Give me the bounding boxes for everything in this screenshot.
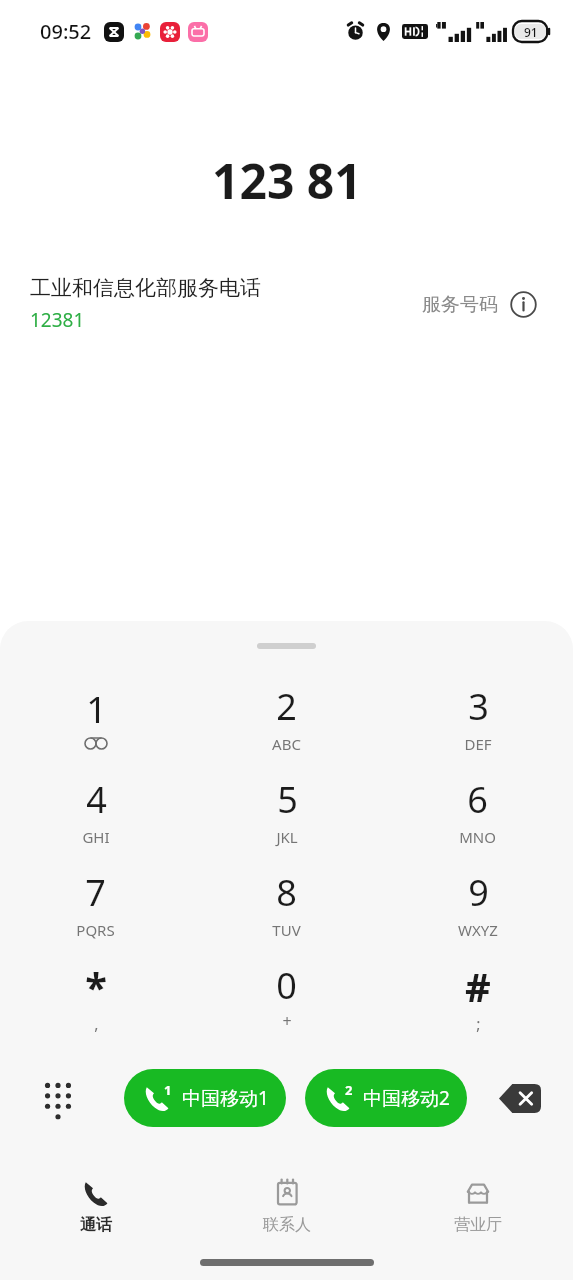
staticText: 9 xyxy=(468,868,489,917)
staticText: 09:52 xyxy=(40,18,92,45)
staticText: 1 xyxy=(164,1081,172,1099)
staticText: TUV xyxy=(272,920,301,940)
button[interactable]: 0 xyxy=(191,950,382,1043)
button[interactable]: 1 xyxy=(0,671,191,764)
button[interactable]: 营业厅 xyxy=(382,1167,573,1245)
staticText: 123 81 xyxy=(212,148,362,213)
staticText: ABC xyxy=(272,734,301,754)
button[interactable]: 3 xyxy=(382,671,573,764)
staticText: 7 xyxy=(85,868,106,917)
staticText: DEF xyxy=(464,734,492,754)
button[interactable]: 7 xyxy=(0,857,191,950)
staticText: 中国移动1 xyxy=(182,1085,269,1111)
button[interactable]: 通话 xyxy=(0,1167,191,1245)
staticText: WXYZ xyxy=(458,920,498,940)
button[interactable]: 6 xyxy=(382,764,573,857)
staticText: 营业厅 xyxy=(454,1215,502,1235)
staticText: ; xyxy=(476,1013,481,1035)
staticText: GHI xyxy=(82,827,110,847)
staticText: JKL xyxy=(276,827,298,847)
staticText: 2 xyxy=(345,1081,353,1099)
staticText: 联系人 xyxy=(263,1215,311,1235)
button[interactable]: 5 xyxy=(191,764,382,857)
staticText: 5 xyxy=(277,775,298,824)
staticText: MNO xyxy=(459,827,496,847)
button[interactable]: 联系人 xyxy=(191,1167,382,1245)
staticText: + xyxy=(282,1010,292,1032)
button[interactable]: 8 xyxy=(191,857,382,950)
staticText: 工业和信息化部服务电话 xyxy=(30,275,261,301)
staticText: 0 xyxy=(276,961,297,1010)
staticText: 服务号码 xyxy=(422,293,498,317)
button[interactable]: 9 xyxy=(382,857,573,950)
button[interactable]: 2 xyxy=(305,1069,467,1127)
staticText: 12381 xyxy=(30,307,85,333)
button[interactable]: Backspace xyxy=(495,1078,545,1118)
staticText: 中国移动2 xyxy=(363,1085,450,1111)
other: Info xyxy=(510,291,537,318)
staticText: 4 xyxy=(86,775,107,824)
button[interactable]: 2 xyxy=(191,671,382,764)
staticText: 通话 xyxy=(80,1215,112,1235)
staticText: 8 xyxy=(276,868,297,917)
button[interactable]: # xyxy=(382,950,573,1043)
staticText: PQRS xyxy=(76,920,115,940)
button[interactable]: 服务号码 xyxy=(416,285,543,324)
button[interactable]: 1 xyxy=(124,1069,286,1127)
staticText: 3 xyxy=(468,682,489,731)
staticText: 6 xyxy=(467,775,488,824)
staticText: 1 xyxy=(86,685,107,734)
button[interactable]: * xyxy=(0,950,191,1043)
button[interactable]: 4 xyxy=(0,764,191,857)
staticText: # xyxy=(465,959,491,1013)
staticText: 91 xyxy=(524,24,538,39)
staticText: 2 xyxy=(276,682,297,731)
staticText: * xyxy=(85,959,107,1013)
button[interactable]: Keypad xyxy=(38,1078,78,1118)
staticText: , xyxy=(94,1013,99,1035)
